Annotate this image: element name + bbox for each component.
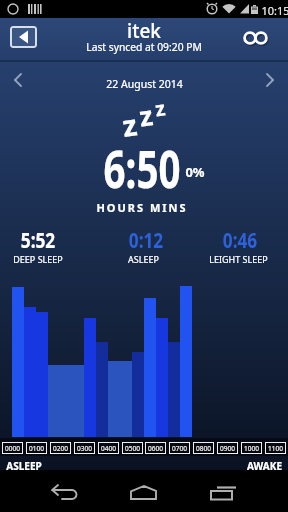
staticText: z [119,104,140,145]
staticText: 10:15 [261,3,288,18]
button[interactable]: 0000 [2,442,23,454]
button[interactable]: 0900 [217,442,238,454]
staticText: Last synced at 09:20 PM [86,40,202,54]
button[interactable] [50,484,80,501]
button[interactable] [209,486,237,500]
staticText: 0200 [53,444,68,453]
staticText: 1000 [244,444,259,453]
button[interactable] [130,485,157,500]
button[interactable] [262,73,276,87]
button[interactable]: 1000 [241,442,262,454]
staticText: ASLEEP [128,253,159,265]
button[interactable] [10,26,37,48]
staticText: ASLEEP [6,459,42,473]
staticText: 6:50 [103,132,180,203]
button[interactable]: 0300 [74,442,95,454]
button[interactable]: 0600 [145,442,166,454]
staticText: 0:46 [223,226,257,255]
staticText: z [136,96,155,135]
staticText: 0300 [77,444,92,453]
button[interactable]: 0100 [26,442,47,454]
staticText: 1100 [268,444,283,453]
staticText: AWAKE [247,459,282,473]
button[interactable]: 0200 [50,442,71,454]
staticText: LEIGHT SLEEP [209,253,268,265]
staticText: 0100 [29,444,44,453]
staticText: 0000 [5,444,20,453]
button[interactable] [240,29,272,47]
staticText: 22 August 2014 [106,77,183,91]
button[interactable]: 0400 [98,442,119,454]
button[interactable]: 1100 [265,442,286,454]
staticText: 5:52 [21,226,55,255]
staticText: itek [127,18,161,44]
staticText: 0600 [148,444,163,453]
button[interactable]: 0700 [169,442,190,454]
staticText: 0:12 [129,226,163,255]
staticText: 0500 [125,444,140,453]
staticText: 0400 [101,444,116,453]
staticText: 0% [185,163,205,181]
staticText: 0700 [172,444,187,453]
staticText: 0900 [220,444,235,453]
button[interactable]: 0500 [122,442,143,454]
staticText: HOURS MINS [96,200,188,215]
staticText: 0800 [196,444,211,453]
staticText: DEEP SLEEP [13,253,63,265]
button[interactable]: 0800 [193,442,214,454]
staticText: z [153,94,167,122]
button[interactable] [12,73,26,87]
